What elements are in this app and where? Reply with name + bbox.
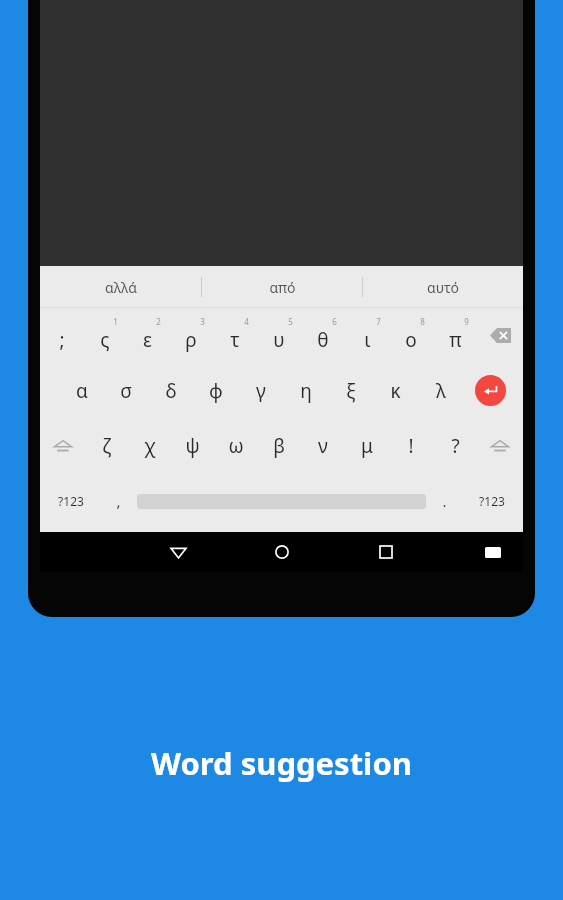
staticText: ω (228, 433, 244, 459)
button[interactable]: γ (238, 363, 283, 418)
staticText: αλλά (105, 278, 137, 297)
staticText: 1 (113, 316, 118, 327)
staticText: από (269, 278, 296, 297)
staticText: , (116, 491, 121, 511)
button[interactable]: ν (301, 418, 345, 473)
button[interactable]: ω (214, 418, 257, 473)
staticText: Word suggestion (151, 742, 412, 784)
staticText: 6 (332, 316, 337, 327)
staticText: β (273, 433, 285, 459)
staticText: ?123 (479, 493, 505, 509)
button[interactable]: Backspace (477, 308, 523, 363)
button[interactable]: Space (135, 473, 428, 529)
button[interactable]: ρ (169, 308, 213, 363)
staticText: 9 (464, 316, 469, 327)
staticText: 8 (420, 316, 425, 327)
button[interactable]: ?123 (40, 473, 102, 529)
staticText: 5 (288, 316, 293, 327)
staticText: λ (436, 378, 446, 404)
staticText: 4 (244, 316, 249, 327)
staticText: ι (364, 327, 371, 353)
button[interactable]: ε (126, 308, 169, 363)
button[interactable]: σ (104, 363, 148, 418)
button[interactable]: αλλά (40, 266, 201, 308)
button[interactable]: ; (40, 308, 83, 363)
button[interactable]: ? (433, 418, 477, 473)
staticText: ζ (102, 433, 111, 459)
button[interactable]: η (283, 363, 328, 418)
staticText: ς (100, 327, 110, 353)
button[interactable]: ξ (328, 363, 373, 418)
button[interactable]: ψ (171, 418, 214, 473)
staticText: ρ (185, 327, 197, 353)
staticText: χ (144, 433, 156, 459)
staticText: ! (408, 433, 414, 459)
staticText: 3 (200, 316, 205, 327)
button[interactable]: ζ (85, 418, 128, 473)
button[interactable]: ς (83, 308, 126, 363)
button[interactable]: θ (301, 308, 345, 363)
staticText: ο (405, 327, 417, 353)
button[interactable]: Enter (463, 363, 517, 418)
staticText: δ (165, 378, 177, 404)
staticText: μ (361, 433, 373, 459)
button[interactable]: φ (193, 363, 238, 418)
staticText: τ (230, 327, 240, 353)
staticText: . (442, 491, 447, 511)
staticText: ψ (185, 433, 200, 459)
button[interactable]: Shift (477, 418, 523, 473)
button[interactable]: χ (128, 418, 171, 473)
staticText: αυτό (427, 278, 459, 297)
button[interactable]: δ (148, 363, 193, 418)
button[interactable]: αυτό (363, 266, 523, 308)
button[interactable]: κ (373, 363, 418, 418)
staticText: ?123 (58, 493, 84, 509)
button[interactable]: από (202, 266, 362, 308)
button[interactable]: τ (213, 308, 257, 363)
button[interactable]: Back (158, 532, 198, 572)
staticText: φ (209, 378, 223, 404)
button[interactable]: λ (418, 363, 463, 418)
staticText: π (449, 327, 462, 353)
staticText: γ (256, 378, 266, 404)
button[interactable]: υ (257, 308, 301, 363)
staticText: η (300, 378, 312, 404)
button[interactable]: ο (389, 308, 433, 363)
button[interactable]: Recents (366, 532, 406, 572)
staticText: α (76, 378, 88, 404)
button[interactable]: , (102, 473, 135, 529)
staticText: ; (59, 327, 65, 353)
button[interactable]: Switch keyboard (475, 534, 511, 570)
button[interactable]: β (257, 418, 301, 473)
button[interactable]: ?123 (461, 473, 523, 529)
button[interactable]: α (60, 363, 104, 418)
staticText: 7 (376, 316, 381, 327)
staticText: κ (390, 378, 401, 404)
button[interactable]: μ (345, 418, 389, 473)
button[interactable]: ! (389, 418, 433, 473)
button[interactable]: Home (262, 532, 302, 572)
staticText: ξ (346, 378, 356, 404)
button[interactable]: ι (345, 308, 389, 363)
button[interactable]: Shift (40, 418, 85, 473)
staticText: σ (120, 378, 132, 404)
staticText: υ (273, 327, 285, 353)
staticText: ε (143, 327, 152, 353)
staticText: ν (318, 433, 328, 459)
button[interactable]: π (433, 308, 477, 363)
staticText: ? (451, 433, 460, 459)
button[interactable]: . (428, 473, 461, 529)
staticText: θ (317, 327, 329, 353)
staticText: 2 (156, 316, 161, 327)
